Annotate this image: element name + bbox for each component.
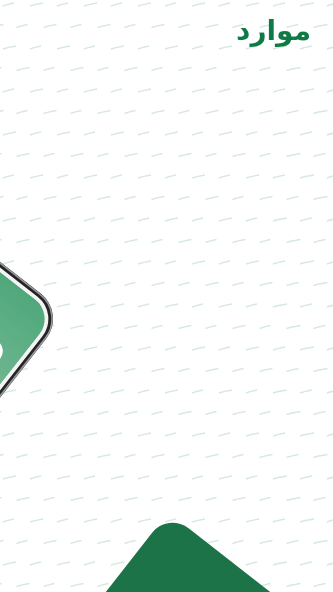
button[interactable]: Mawared login screen illustration [0, 0, 333, 592]
